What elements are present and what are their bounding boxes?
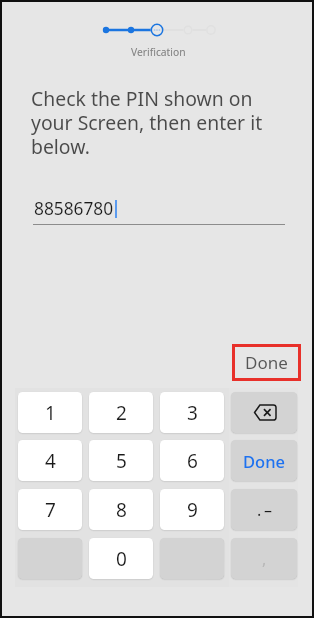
staticText: 5	[116, 448, 127, 474]
staticText: 3	[187, 400, 198, 426]
button[interactable]: . –	[231, 489, 297, 530]
button[interactable]: Done	[231, 440, 297, 481]
button[interactable]: Done	[235, 347, 298, 378]
staticText: 88586780	[34, 197, 114, 221]
button[interactable]: 3	[160, 392, 224, 433]
button[interactable]: 2	[89, 392, 153, 433]
button[interactable]: Backspace	[231, 392, 297, 433]
button[interactable]: 5	[89, 440, 153, 481]
staticText: 9	[187, 497, 198, 523]
button[interactable]: 1	[18, 392, 82, 433]
staticText: 2	[116, 400, 127, 426]
button[interactable]: 4	[18, 440, 82, 481]
button[interactable]: 9	[160, 489, 224, 530]
staticText: 0	[116, 546, 127, 572]
staticText: Done	[245, 351, 288, 374]
staticText: ,	[262, 548, 267, 570]
button[interactable]: 8	[89, 489, 153, 530]
button[interactable]: 7	[18, 489, 82, 530]
staticText: 8	[116, 497, 127, 523]
staticText: . –	[257, 499, 272, 521]
staticText: 1	[45, 400, 56, 426]
staticText: 4	[45, 448, 56, 474]
staticText: Done	[243, 450, 285, 472]
staticText: 6	[187, 448, 198, 474]
staticText: Verification	[131, 45, 186, 59]
staticText: Check the PIN shown on your Screen, then…	[31, 85, 273, 159]
button[interactable]: 6	[160, 440, 224, 481]
button[interactable]: 0	[89, 538, 153, 579]
staticText: 7	[45, 497, 56, 523]
